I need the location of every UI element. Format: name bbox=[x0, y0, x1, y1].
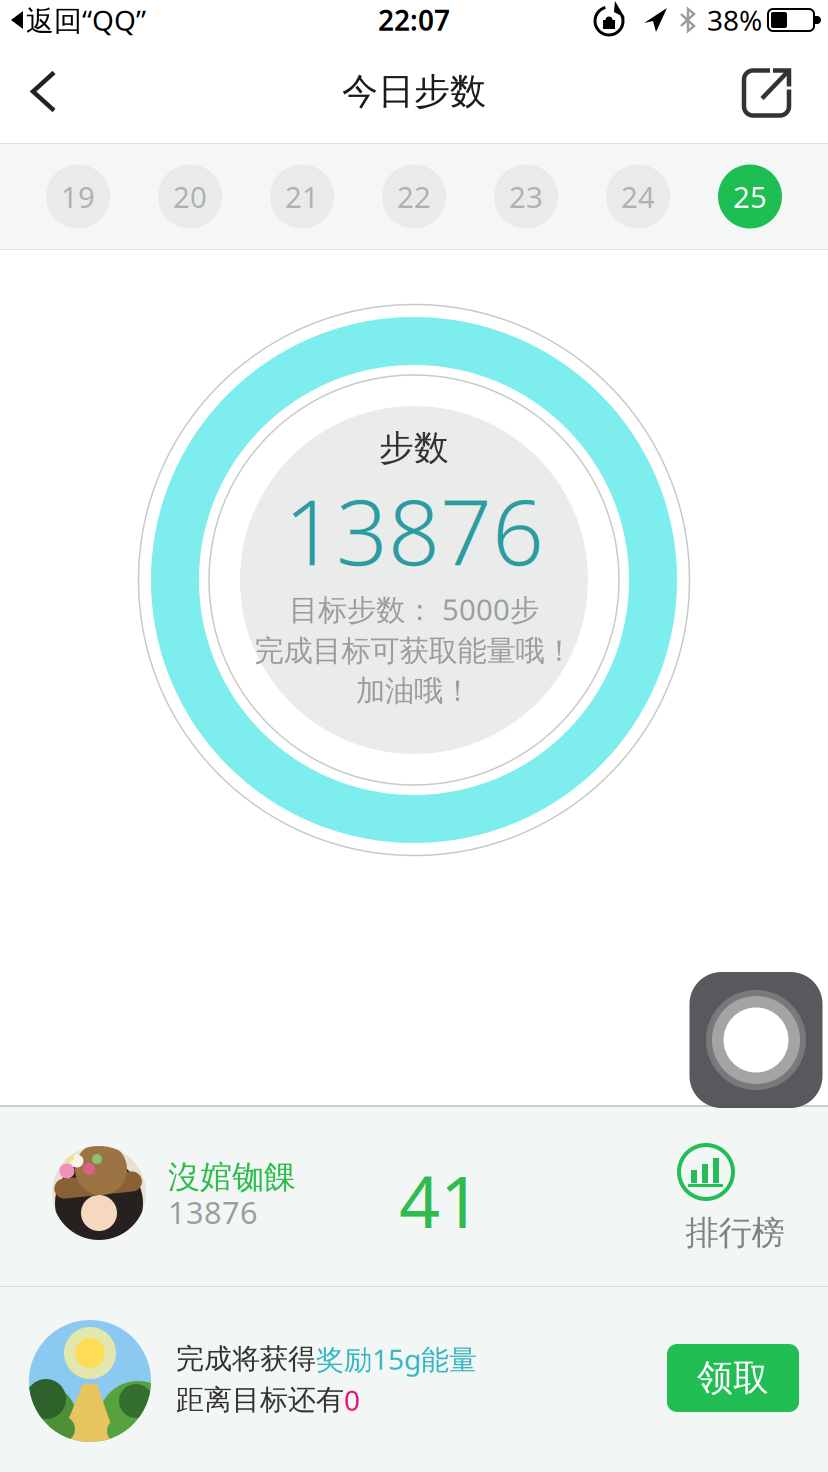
button[interactable]: 24 bbox=[606, 164, 670, 228]
button[interactable] bbox=[689, 972, 822, 1108]
staticText: 13876 bbox=[168, 1192, 258, 1232]
staticText: 步数 bbox=[379, 427, 449, 469]
staticText: 21 bbox=[285, 177, 319, 216]
button[interactable]: 23 bbox=[494, 164, 558, 228]
staticText: 加油哦！ bbox=[356, 673, 472, 709]
staticText: 41 bbox=[399, 1152, 481, 1248]
button[interactable]: 返回“QQ” bbox=[10, 1, 146, 39]
staticText: 20 bbox=[173, 177, 207, 216]
button[interactable]: 21 bbox=[270, 164, 334, 228]
staticText: 领取 bbox=[697, 1356, 769, 1400]
staticText: 完成将获得 bbox=[176, 1342, 316, 1376]
button[interactable] bbox=[744, 47, 828, 135]
staticText: 目标步数： 5000步 bbox=[289, 589, 539, 628]
staticText: 返回“QQ” bbox=[26, 1, 146, 39]
staticText: 13876 bbox=[284, 470, 544, 590]
button[interactable]: 19 bbox=[46, 164, 110, 228]
staticText: 25 bbox=[733, 177, 767, 216]
button[interactable]: 22 bbox=[382, 164, 446, 228]
staticText: 22:07 bbox=[378, 1, 450, 39]
button[interactable]: 20 bbox=[158, 164, 222, 228]
button[interactable]: 排行榜 bbox=[640, 1132, 800, 1282]
staticText: 23 bbox=[509, 177, 543, 216]
staticText: 22 bbox=[397, 177, 431, 216]
staticText: 沒婠铷餜 bbox=[168, 1157, 296, 1197]
staticText: 24 bbox=[621, 177, 655, 216]
staticText: 排行榜 bbox=[685, 1212, 784, 1253]
staticText: 奖励15g能量 bbox=[316, 1340, 477, 1378]
button[interactable]: 领取 bbox=[667, 1344, 799, 1412]
button[interactable] bbox=[0, 50, 58, 132]
staticText: 38% bbox=[707, 1, 762, 39]
staticText: 今日步数 bbox=[342, 69, 486, 114]
staticText: 19 bbox=[61, 177, 95, 216]
staticText: 距离目标还有 bbox=[176, 1383, 344, 1417]
staticText: 完成目标可获取能量哦！ bbox=[254, 633, 573, 669]
button[interactable]: 25 bbox=[718, 164, 782, 228]
staticText: 0 bbox=[344, 1381, 360, 1419]
